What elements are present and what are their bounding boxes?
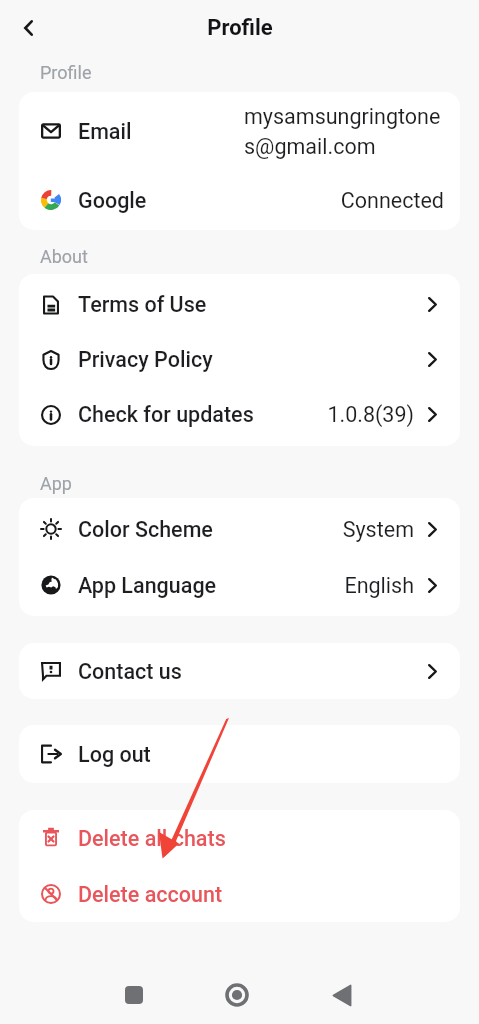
button[interactable]: Email <box>19 92 460 170</box>
button[interactable]: Privacy Policy <box>19 332 460 387</box>
staticText: System <box>342 517 414 542</box>
staticText: Privacy Policy <box>78 347 213 372</box>
button[interactable]: Back <box>8 8 48 48</box>
button[interactable]: Back <box>318 971 366 1019</box>
staticText: Profile <box>207 15 273 41</box>
staticText: mysamsungringtone s@gmail.com <box>244 104 441 159</box>
button[interactable]: Delete all chats <box>19 810 460 866</box>
button[interactable]: Terms of Use <box>19 277 460 332</box>
staticText: About <box>40 246 88 267</box>
button[interactable]: Color Scheme <box>19 501 460 557</box>
staticText: Profile <box>40 62 92 83</box>
staticText: App Language <box>78 573 217 598</box>
button[interactable]: Contact us <box>19 643 460 699</box>
button[interactable]: Home <box>213 971 261 1019</box>
button[interactable]: App Language <box>19 557 460 613</box>
staticText: Log out <box>78 742 151 767</box>
staticText: Google <box>78 188 147 213</box>
button[interactable]: Google <box>19 170 460 230</box>
staticText: Connected <box>340 188 444 213</box>
staticText: Delete account <box>78 882 223 907</box>
button[interactable]: Check for updates <box>19 387 460 442</box>
button[interactable]: Log out <box>19 725 460 783</box>
staticText: Email <box>78 119 132 144</box>
staticText: Check for updates <box>78 402 254 427</box>
button[interactable]: Recents <box>110 971 158 1019</box>
staticText: Delete all chats <box>78 826 226 851</box>
staticText: 1.0.8(39) <box>327 402 414 427</box>
button[interactable]: Delete account <box>19 866 460 922</box>
staticText: Color Scheme <box>78 517 213 542</box>
staticText: Contact us <box>78 659 182 684</box>
staticText: English <box>344 573 414 598</box>
staticText: App <box>40 473 72 494</box>
staticText: Terms of Use <box>78 292 207 317</box>
